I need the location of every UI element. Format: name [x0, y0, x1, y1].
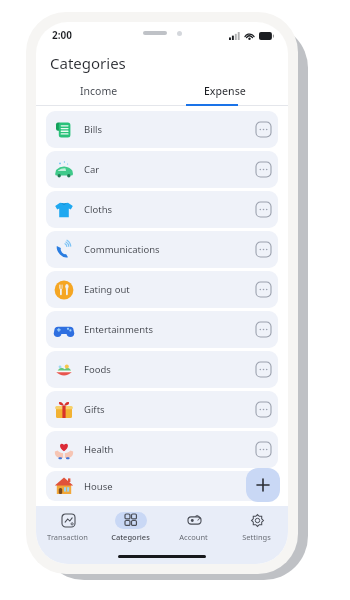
staticText: Foods: [84, 363, 111, 376]
staticText: 2:00: [52, 28, 72, 42]
staticText: Expense: [204, 84, 246, 98]
button[interactable]: Income: [36, 78, 162, 104]
button[interactable]: Foods: [46, 351, 278, 388]
button[interactable]: More options for House: [256, 479, 271, 494]
button[interactable]: Expense: [162, 78, 288, 104]
staticText: Gifts: [84, 403, 105, 416]
staticText: Health: [84, 443, 114, 456]
staticText: Account: [179, 532, 208, 542]
staticText: Bills: [84, 123, 103, 136]
button[interactable]: More options for Cloths: [256, 202, 271, 217]
button[interactable]: Car: [46, 151, 278, 188]
button[interactable]: More options for Bills: [256, 122, 271, 137]
staticText: Income: [80, 84, 118, 98]
button[interactable]: Gifts: [46, 391, 278, 428]
button[interactable]: More options for Gifts: [256, 402, 271, 417]
button[interactable]: Health: [46, 431, 278, 468]
button[interactable]: More options for Entertainments: [256, 322, 271, 337]
button[interactable]: Categories: [99, 506, 162, 548]
button[interactable]: More options for Communications: [256, 242, 271, 257]
button[interactable]: Bills: [46, 111, 278, 148]
staticText: Transaction: [47, 532, 88, 542]
button[interactable]: Communications: [46, 231, 278, 268]
button[interactable]: House: [46, 471, 278, 501]
button[interactable]: Settings: [225, 506, 288, 548]
staticText: Communications: [84, 243, 160, 256]
button[interactable]: Add category: [246, 468, 280, 502]
staticText: House: [84, 480, 113, 493]
button[interactable]: Eating out: [46, 271, 278, 308]
button[interactable]: Transaction: [36, 506, 99, 548]
staticText: Settings: [242, 532, 271, 542]
button[interactable]: More options for Health: [256, 442, 271, 457]
button[interactable]: More options for Car: [256, 162, 271, 177]
button[interactable]: Cloths: [46, 191, 278, 228]
staticText: Eating out: [84, 283, 130, 296]
staticText: Categories: [50, 53, 126, 73]
staticText: Entertainments: [84, 323, 154, 336]
button[interactable]: Account: [162, 506, 225, 548]
staticText: Categories: [111, 532, 150, 542]
staticText: Car: [84, 163, 100, 176]
button[interactable]: More options for Eating out: [256, 282, 271, 297]
button[interactable]: More options for Foods: [256, 362, 271, 377]
staticText: Cloths: [84, 203, 113, 216]
button[interactable]: Entertainments: [46, 311, 278, 348]
